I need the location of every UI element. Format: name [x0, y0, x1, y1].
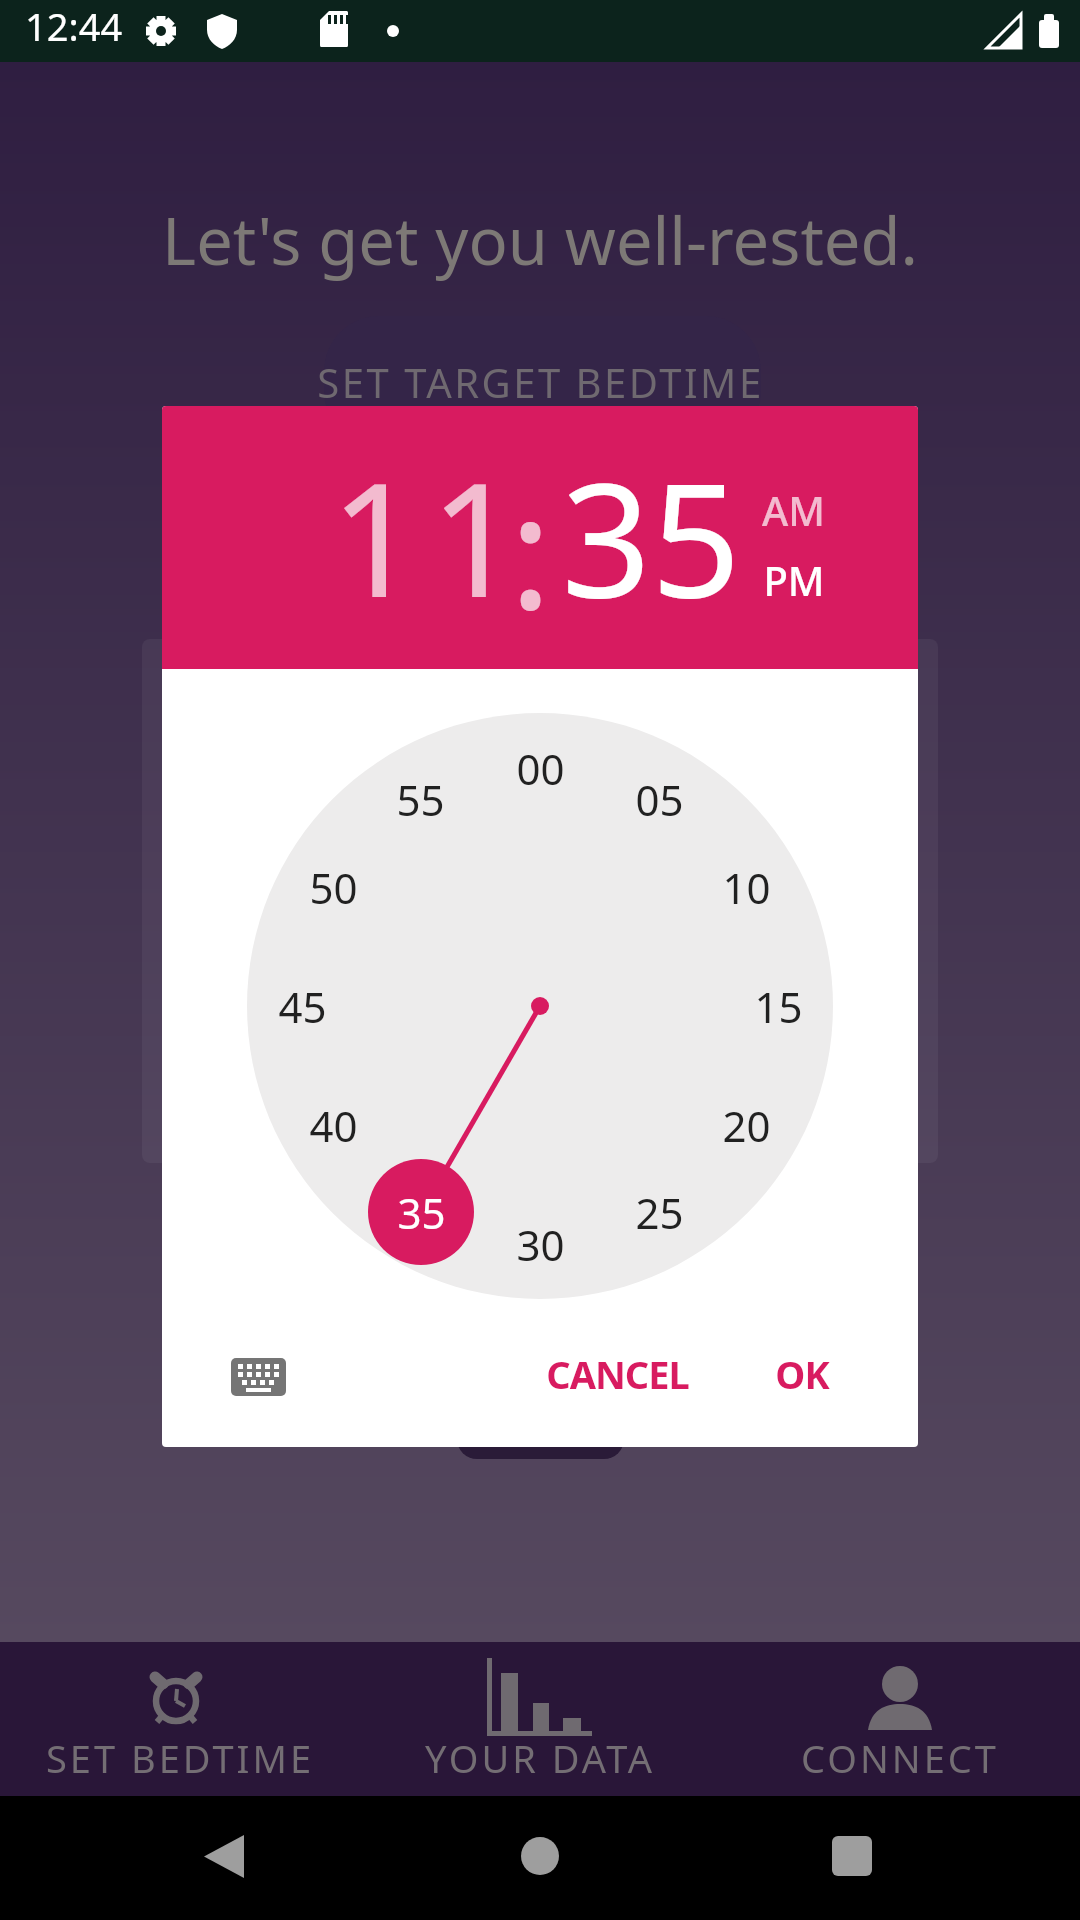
staticText: 25 [635, 1184, 684, 1241]
staticText: YOUR DATA [425, 1732, 656, 1784]
button[interactable]: CANCEL [517, 1348, 717, 1400]
button[interactable]: PM [751, 550, 836, 610]
staticText: SET TARGET BEDTIME [317, 355, 764, 409]
staticText: 40 [309, 1097, 358, 1154]
staticText: 00 [516, 740, 565, 797]
button[interactable]: CONNECT [720, 1642, 1080, 1796]
button[interactable]: OK [742, 1348, 862, 1400]
button[interactable]: YOUR DATA [360, 1642, 720, 1796]
staticText: 05 [635, 771, 684, 828]
staticText: 45 [278, 978, 327, 1035]
staticText: 15 [754, 978, 803, 1035]
staticText: SET BEDTIME [46, 1732, 315, 1784]
staticText: AM [762, 483, 825, 537]
staticText: 55 [396, 771, 445, 828]
staticText: 35 [561, 429, 741, 629]
button[interactable]: AM [751, 480, 836, 540]
staticText: 12:44 [25, 0, 123, 48]
staticText: CONNECT [801, 1732, 999, 1784]
staticText: 35 [397, 1184, 446, 1241]
staticText: 20 [722, 1097, 771, 1154]
button[interactable]: SET BEDTIME [0, 1642, 360, 1796]
staticText: PM [763, 553, 825, 607]
staticText: : [509, 441, 552, 641]
staticText: OK [775, 1348, 829, 1400]
staticText: 10 [722, 859, 771, 916]
staticText: CANCEL [546, 1348, 689, 1400]
staticText: Let's get you well-rested. [162, 196, 918, 285]
staticText: 11 [330, 429, 530, 629]
staticText: 30 [516, 1216, 565, 1273]
button[interactable] [231, 1358, 286, 1396]
button[interactable] [324, 316, 761, 446]
staticText: 50 [309, 859, 358, 916]
